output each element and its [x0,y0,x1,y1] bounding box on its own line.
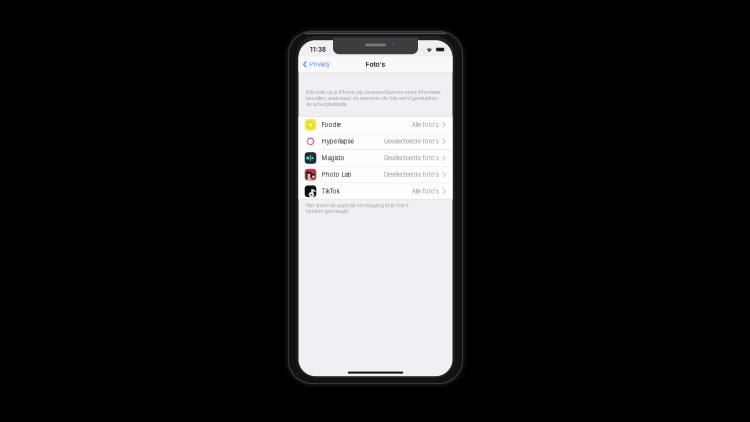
staticText: Foto's die op je iPhone zijn bewaard kun… [306,90,441,107]
staticText: Privacy [309,60,329,68]
staticText: Alle foto's [412,121,439,128]
staticText: Geselecteerde foto's [384,171,439,178]
staticText: Foto's [365,60,385,68]
button[interactable]: Foodie [298,117,452,133]
staticText: Geselecteerde foto's [384,154,439,162]
button[interactable]: Photo Lab [298,166,452,183]
staticText: Hier staan de apps die om toegang tot je… [306,203,408,214]
staticText: 11:38 [310,46,326,53]
staticText: TikTok [321,187,339,195]
staticText: Hyperlapse [321,138,354,145]
button[interactable]: Magisto [298,150,452,166]
staticText: Geselecteerde foto's [384,138,439,145]
staticText: Foodie [321,121,341,128]
staticText: Alle foto's [412,188,439,195]
button[interactable]: TikTok [298,183,452,199]
staticText: Photo Lab [321,171,351,178]
button[interactable]: Hyperlapse [298,133,452,150]
staticText: Magisto [321,154,344,162]
button[interactable]: Privacy [298,57,333,72]
